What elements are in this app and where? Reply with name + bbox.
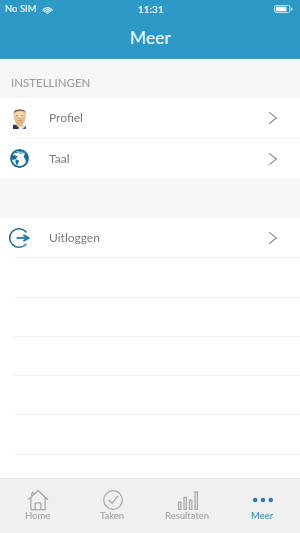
staticText: No SIM: [5, 3, 37, 14]
staticText: Uitloggen: [49, 230, 100, 244]
staticText: INSTELLINGEN: [11, 76, 91, 90]
staticText: Taal: [49, 151, 70, 165]
staticText: 11:31: [138, 3, 164, 15]
button[interactable]: Profiel: [0, 98, 300, 138]
staticText: Profiel: [49, 110, 83, 124]
button[interactable]: Home: [0, 479, 75, 533]
button[interactable]: Uitloggen: [0, 218, 300, 257]
button[interactable]: Meer: [225, 479, 300, 533]
staticText: Taken: [100, 510, 125, 521]
staticText: Meer: [130, 27, 171, 48]
staticText: Home: [25, 510, 51, 521]
button[interactable]: Resultaten: [150, 479, 225, 533]
staticText: Resultaten: [165, 510, 210, 521]
button[interactable]: Taken: [75, 479, 150, 533]
staticText: Meer: [251, 510, 274, 521]
button[interactable]: Taal: [0, 139, 300, 178]
